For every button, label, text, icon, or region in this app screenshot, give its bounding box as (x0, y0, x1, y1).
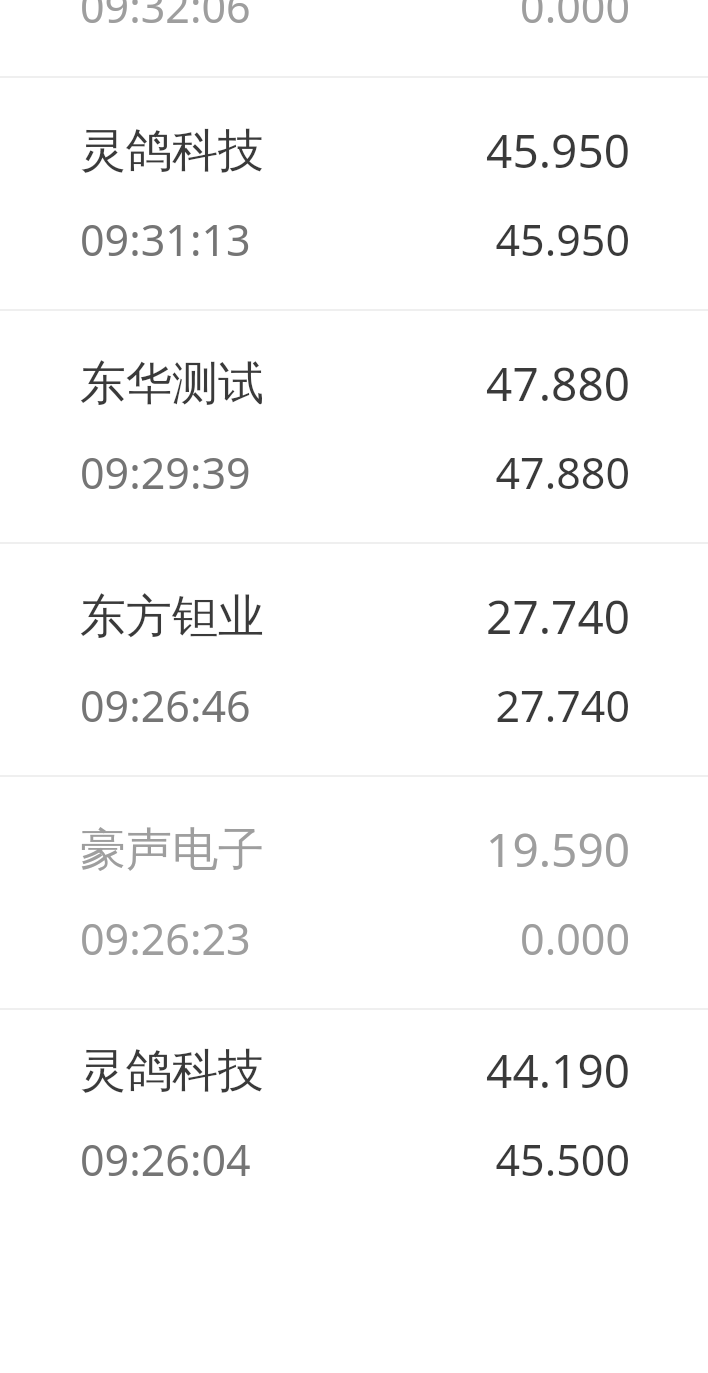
staticText: 09:26:46 (80, 676, 251, 735)
staticText: 27.740 (495, 676, 630, 735)
staticText: 47.880 (495, 443, 630, 502)
staticText: 45.950 (486, 119, 630, 182)
staticText: 27.740 (486, 585, 630, 648)
button[interactable]: 灵鸽科技 (0, 1010, 708, 1218)
staticText: 09:32:06 (80, 0, 251, 36)
staticText: 09:31:13 (80, 210, 251, 269)
staticText: 豪声电子 (80, 821, 264, 879)
staticText: 19.590 (486, 818, 630, 881)
staticText: 47.880 (486, 352, 630, 415)
staticText: 44.190 (486, 1039, 630, 1102)
staticText: 45.950 (495, 210, 630, 269)
staticText: 09:26:04 (80, 1130, 251, 1189)
staticText: 东华测试 (80, 355, 264, 413)
staticText: 0.000 (520, 0, 630, 36)
staticText: 09:29:39 (80, 443, 251, 502)
staticText: 灵鸽科技 (80, 122, 264, 180)
staticText: 0.000 (520, 909, 630, 968)
button[interactable]: 灵鸽科技 (0, 78, 708, 309)
button[interactable]: 东方钽业 (0, 544, 708, 775)
staticText: 东方钽业 (80, 588, 264, 646)
button[interactable]: 海泰科技 (0, 0, 708, 76)
staticText: 09:26:23 (80, 909, 251, 968)
staticText: 灵鸽科技 (80, 1042, 264, 1100)
staticText: 45.500 (495, 1130, 630, 1189)
button[interactable]: 豪声电子 (0, 777, 708, 1008)
button[interactable]: 东华测试 (0, 311, 708, 542)
